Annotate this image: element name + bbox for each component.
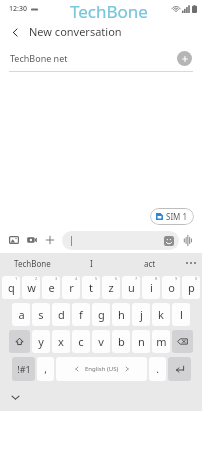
button[interactable]: y — [32, 330, 50, 353]
button[interactable]: x — [52, 330, 70, 353]
staticText: , — [44, 362, 47, 376]
staticText: w — [27, 280, 36, 295]
staticText: 4 — [75, 276, 78, 281]
button[interactable]: a — [12, 303, 30, 326]
button[interactable]: j — [132, 303, 150, 326]
staticText: h — [118, 307, 125, 322]
button[interactable]: l — [172, 303, 190, 326]
button[interactable]: Add recipient — [177, 51, 192, 66]
staticText: TechBone — [70, 0, 148, 18]
staticText: i — [150, 280, 153, 295]
staticText: 9 — [175, 276, 178, 281]
button[interactable]: Back — [6, 23, 24, 41]
staticText: n — [138, 334, 145, 349]
staticText: TechBone — [14, 258, 51, 269]
staticText: I — [90, 258, 93, 269]
staticText: 1 — [15, 276, 18, 281]
staticText: c — [78, 334, 84, 349]
staticText: t — [89, 280, 93, 295]
staticText: SIM 1 — [166, 211, 188, 222]
staticText: j — [140, 307, 143, 322]
staticText: l — [180, 307, 183, 322]
button[interactable]: SIM 1 — [150, 208, 194, 225]
staticText: 3 — [55, 276, 58, 281]
button[interactable]: k — [152, 303, 170, 326]
staticText: New conversation — [29, 24, 122, 39]
button[interactable]: Shift — [9, 330, 30, 353]
button[interactable]: Camera — [23, 231, 41, 249]
button[interactable]: n — [132, 330, 150, 353]
staticText: y — [38, 334, 44, 349]
staticText: f — [79, 307, 83, 322]
button[interactable]: h — [112, 303, 130, 326]
staticText: o — [168, 280, 175, 295]
button[interactable]: v — [92, 330, 110, 353]
button[interactable]: Attach — [41, 231, 59, 249]
staticText: r — [69, 280, 74, 295]
staticText: English (US) — [85, 365, 119, 373]
button[interactable]: w — [22, 276, 40, 299]
staticText: 7 — [135, 276, 138, 281]
button[interactable]: , — [37, 357, 54, 381]
button[interactable]: r — [62, 276, 80, 299]
staticText: u — [128, 280, 135, 295]
button[interactable]: t — [82, 276, 100, 299]
staticText: 6 — [115, 276, 118, 281]
button[interactable]: Hide keyboard — [6, 388, 24, 406]
button[interactable]: Stickers — [62, 231, 179, 250]
button[interactable]: I — [64, 253, 119, 273]
staticText: z — [108, 280, 114, 295]
staticText: q — [8, 280, 15, 295]
button[interactable]: act — [119, 253, 180, 273]
button[interactable]: o — [162, 276, 180, 299]
button[interactable]: q — [2, 276, 20, 299]
staticText: 2 — [35, 276, 38, 281]
button[interactable]: p — [182, 276, 200, 299]
staticText: 12:30 — [9, 4, 27, 14]
button[interactable]: English (US) — [56, 357, 147, 381]
button[interactable]: Keyboard options — [180, 253, 202, 273]
staticText: k — [158, 307, 164, 322]
button[interactable]: f — [72, 303, 90, 326]
staticText: m — [156, 334, 167, 349]
staticText: TechBone net — [10, 52, 177, 64]
button[interactable]: . — [149, 357, 166, 381]
staticText: b — [118, 334, 125, 349]
staticText: 8 — [155, 276, 158, 281]
other: Stickers — [164, 236, 174, 246]
button[interactable]: i — [142, 276, 160, 299]
staticText: g — [98, 307, 105, 322]
staticText: d — [58, 307, 65, 322]
button[interactable]: g — [92, 303, 110, 326]
staticText: 5 — [95, 276, 98, 281]
staticText: . — [156, 362, 159, 376]
button[interactable]: Enter — [168, 357, 191, 381]
staticText: act — [144, 258, 156, 269]
button[interactable]: b — [112, 330, 130, 353]
button[interactable]: Voice message — [179, 231, 197, 249]
button[interactable]: e — [42, 276, 60, 299]
staticText: p — [188, 280, 195, 295]
staticText: s — [38, 307, 44, 322]
button[interactable]: TechBone — [0, 253, 64, 273]
button[interactable]: Gallery — [5, 231, 23, 249]
button[interactable]: c — [72, 330, 90, 353]
staticText: e — [48, 280, 55, 295]
staticText: x — [58, 334, 64, 349]
staticText: a — [18, 307, 25, 322]
staticText: v — [98, 334, 104, 349]
button[interactable]: m — [152, 330, 170, 353]
staticText: !#1 — [17, 363, 31, 375]
staticText: 0 — [195, 276, 198, 281]
button[interactable]: !#1 — [12, 357, 35, 381]
button[interactable]: s — [32, 303, 50, 326]
button[interactable]: z — [102, 276, 120, 299]
button[interactable]: d — [52, 303, 70, 326]
button[interactable]: u — [122, 276, 140, 299]
button[interactable]: Backspace — [172, 330, 193, 353]
